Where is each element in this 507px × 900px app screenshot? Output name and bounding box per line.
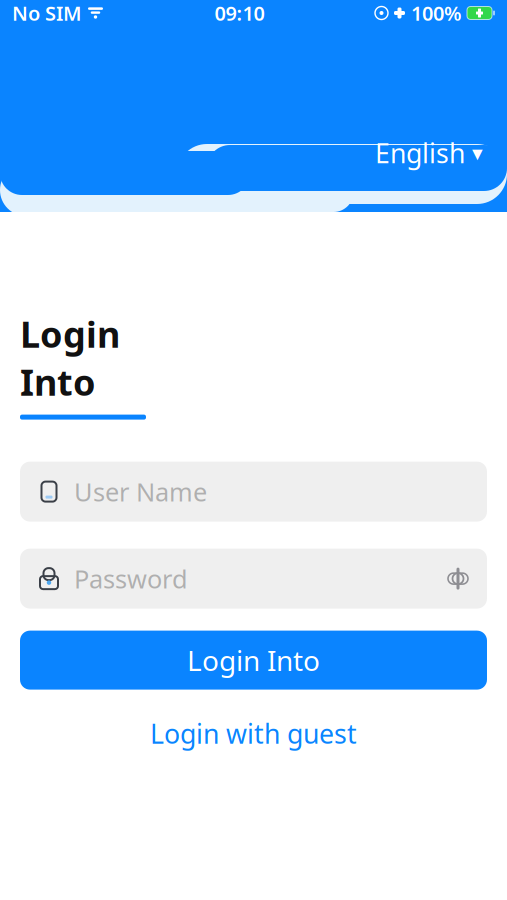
staticText: ▾	[472, 141, 483, 165]
staticText: Login Into	[20, 310, 120, 406]
button[interactable]: English	[365, 129, 493, 177]
button[interactable]: Login Into	[20, 631, 487, 690]
staticText: Login Into	[187, 641, 320, 679]
button[interactable]: Login with guest	[20, 708, 487, 759]
staticText: English	[375, 135, 465, 171]
staticText: 100%	[411, 0, 462, 26]
staticText: User Name	[74, 475, 207, 508]
staticText: 09:10	[214, 0, 264, 26]
staticText: No SIM	[12, 0, 82, 26]
staticText: Login with guest	[150, 716, 357, 751]
button[interactable]: Show password	[439, 562, 469, 596]
staticText: Password	[74, 562, 188, 595]
